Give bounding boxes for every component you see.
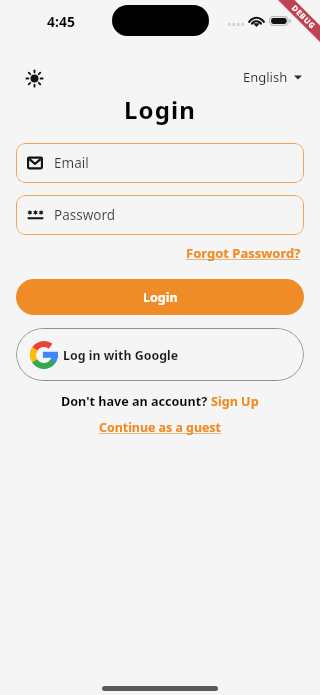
staticText: 4:45 <box>47 12 75 31</box>
button[interactable]: Toggle theme <box>18 62 51 95</box>
button[interactable]: Language English <box>241 64 304 90</box>
button[interactable]: Password <box>16 195 304 235</box>
button[interactable]: Login <box>16 279 304 315</box>
staticText: Login <box>143 289 178 306</box>
staticText: Email <box>54 154 89 172</box>
staticText: English <box>243 68 288 86</box>
button[interactable]: Continue as a guest <box>95 417 225 438</box>
button[interactable]: Sign Up <box>211 393 259 410</box>
button[interactable]: Email <box>16 143 304 183</box>
staticText: DEBUG <box>290 3 318 31</box>
staticText: Don't have an account? <box>61 393 211 410</box>
staticText: Password <box>54 206 116 224</box>
staticText: Log in with Google <box>63 347 179 364</box>
button[interactable]: Log in with Google <box>16 328 304 381</box>
button[interactable]: Forgot Password? <box>183 240 304 266</box>
staticText: Login <box>0 93 320 126</box>
